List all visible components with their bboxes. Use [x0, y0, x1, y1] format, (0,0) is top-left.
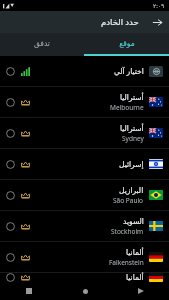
button[interactable]: Back	[147, 12, 167, 32]
staticText: تدفق	[34, 39, 50, 48]
button[interactable]: أستراليا	[0, 87, 169, 117]
staticText: ألمانيا	[126, 273, 144, 282]
staticText: إسرائيل	[119, 160, 144, 169]
staticText: Sydney	[122, 134, 144, 143]
button[interactable]: تدفق	[0, 33, 84, 54]
staticText: ٢:٠٩	[153, 2, 165, 10]
button[interactable]: Recents	[0, 282, 57, 300]
button[interactable]: ألمانيا	[0, 242, 169, 272]
staticText: أستراليا	[120, 124, 144, 133]
button[interactable]: السويد	[0, 211, 169, 241]
staticText: Stockholm	[111, 227, 144, 236]
button[interactable]: موقع	[84, 33, 169, 54]
button[interactable]: البرازيل	[0, 180, 169, 210]
button[interactable]: أستراليا	[0, 118, 169, 148]
staticText: حدد الخادم	[101, 16, 139, 28]
staticText: البرازيل	[119, 186, 144, 195]
staticText: São Paulo	[113, 196, 144, 205]
button[interactable]: إسرائيل	[0, 149, 169, 179]
staticText: السويد	[123, 217, 144, 226]
staticText: Melbourne	[110, 103, 144, 112]
staticText: أستراليا	[120, 93, 144, 102]
staticText: موقع	[119, 39, 135, 48]
staticText: Falkenstein	[109, 258, 144, 267]
staticText: ألمانيا	[126, 248, 144, 257]
staticText: اختيار آلي	[114, 66, 144, 76]
button[interactable]: Home	[57, 282, 113, 300]
button[interactable]: Back	[113, 282, 169, 300]
button[interactable]: اختيار آلي	[0, 56, 169, 86]
button[interactable]: ألمانيا	[0, 273, 169, 282]
